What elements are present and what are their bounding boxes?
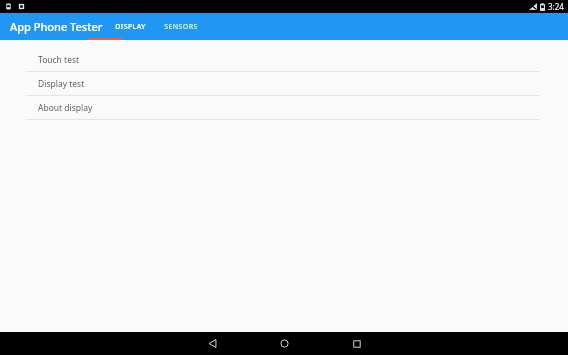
staticText: Display test — [38, 78, 85, 90]
button[interactable]: About display — [0, 96, 568, 119]
staticText: App Phone Tester — [10, 19, 103, 34]
button[interactable]: DISPLAY — [112, 13, 149, 40]
staticText: About display — [38, 102, 93, 114]
button[interactable]: Home — [270, 332, 298, 355]
staticText: DISPLAY — [115, 22, 146, 32]
button[interactable]: Recent apps — [343, 332, 371, 355]
button[interactable]: Display test — [0, 72, 568, 95]
button[interactable]: Touch test — [0, 48, 568, 71]
button[interactable]: SENSORS — [161, 13, 201, 40]
staticText: 3:24 — [548, 1, 564, 12]
staticText: Touch test — [38, 54, 80, 66]
staticText: SENSORS — [164, 22, 198, 32]
button[interactable]: Back — [198, 332, 226, 355]
